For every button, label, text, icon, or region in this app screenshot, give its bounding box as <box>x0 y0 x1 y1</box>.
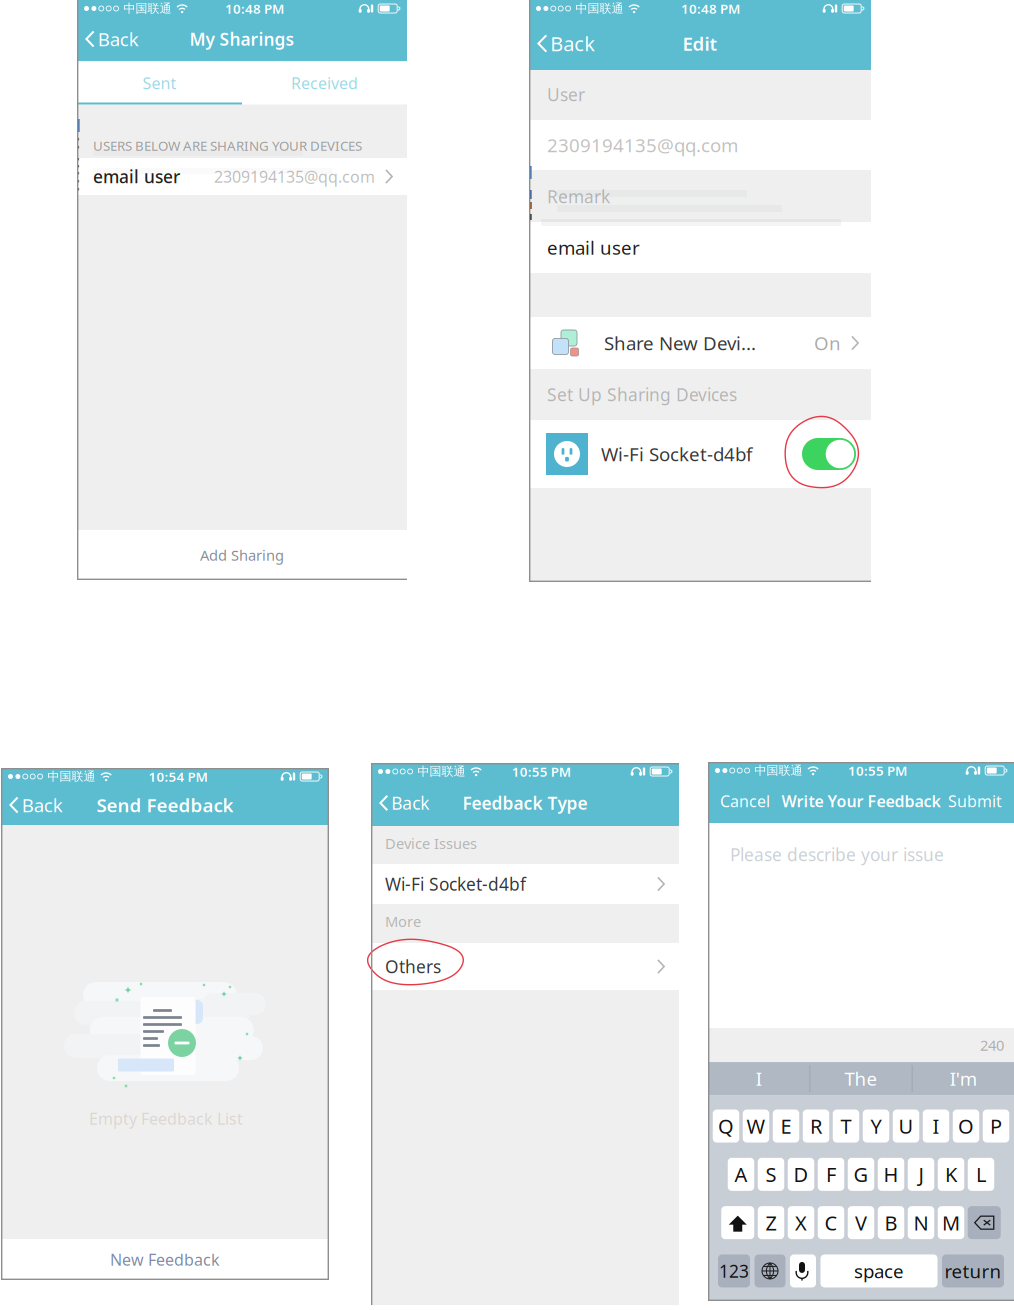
button[interactable]: Back <box>529 17 601 70</box>
staticText: More <box>385 911 421 931</box>
staticText: 中国联通 <box>755 763 803 778</box>
button[interactable]: Y <box>863 1109 889 1142</box>
button[interactable]: S <box>758 1158 784 1191</box>
staticText: 10:55 PM <box>512 763 571 780</box>
staticText: 10:48 PM <box>225 0 284 17</box>
button[interactable]: I <box>923 1109 949 1142</box>
button[interactable]: V <box>848 1206 874 1239</box>
button[interactable]: Delete <box>968 1206 1001 1239</box>
staticText: J <box>918 1161 923 1188</box>
button[interactable]: Dictation <box>790 1254 816 1287</box>
button[interactable]: F <box>818 1158 844 1191</box>
button[interactable]: Submit <box>948 779 1014 823</box>
staticText: Z <box>765 1209 776 1236</box>
button[interactable]: B <box>878 1206 904 1239</box>
staticText: Others <box>385 955 441 978</box>
staticText: V <box>855 1209 867 1236</box>
button[interactable]: U <box>893 1109 919 1142</box>
staticText: Device Issues <box>385 833 477 853</box>
button[interactable]: H <box>878 1158 904 1191</box>
button[interactable]: Shift <box>721 1206 754 1239</box>
staticText: A <box>734 1161 747 1188</box>
button[interactable]: Others <box>371 943 679 990</box>
staticText: I <box>756 1066 762 1091</box>
button[interactable]: The <box>810 1062 912 1095</box>
staticText: X <box>795 1209 807 1236</box>
staticText: 2309194135@qq.com <box>547 133 738 157</box>
button[interactable]: email user <box>77 158 407 195</box>
staticText: On <box>814 331 841 355</box>
button[interactable]: N <box>908 1206 934 1239</box>
staticText: Sent <box>142 72 176 94</box>
button[interactable]: T <box>833 1109 859 1142</box>
staticText: 中国联通 <box>124 1 172 16</box>
staticText: User <box>547 83 585 106</box>
staticText: N <box>913 1209 928 1236</box>
staticText: My Sharings <box>189 27 294 50</box>
button[interactable]: Cancel <box>708 779 776 823</box>
staticText: Add Sharing <box>200 545 284 565</box>
button[interactable]: return <box>942 1254 1004 1287</box>
staticText: I'm <box>950 1066 977 1091</box>
staticText: U <box>898 1113 913 1139</box>
staticText: email user <box>547 235 640 260</box>
staticText: Back <box>98 27 139 51</box>
button[interactable]: M <box>938 1206 964 1239</box>
staticText: Cancel <box>720 790 770 812</box>
button[interactable]: R <box>803 1109 829 1142</box>
staticText: return <box>944 1259 1001 1283</box>
button[interactable]: Q <box>713 1109 739 1142</box>
staticText: Y <box>870 1113 881 1139</box>
button[interactable]: Switch keyboard <box>754 1254 785 1287</box>
staticText: E <box>780 1113 791 1139</box>
staticText: Feedback Type <box>462 791 587 814</box>
button[interactable]: Sent <box>77 61 242 104</box>
button[interactable]: Back <box>371 780 435 826</box>
staticText: Edit <box>682 31 717 56</box>
button[interactable]: G <box>848 1158 874 1191</box>
staticText: Back <box>550 30 595 57</box>
button[interactable]: O <box>953 1109 979 1142</box>
staticText: 240 <box>980 1035 1004 1055</box>
button[interactable]: Share New Devi... <box>529 317 871 369</box>
button[interactable]: Back <box>1 785 69 825</box>
button[interactable]: Wi-Fi Socket-d4bf <box>371 864 679 904</box>
button[interactable]: D <box>788 1158 814 1191</box>
staticText: 10:55 PM <box>848 762 907 779</box>
staticText: Remark <box>547 185 610 208</box>
staticText: space <box>854 1259 904 1283</box>
button[interactable]: Z <box>758 1206 784 1239</box>
staticText: email user <box>93 165 180 188</box>
button[interactable]: E <box>773 1109 799 1142</box>
staticText: P <box>990 1113 1002 1139</box>
button[interactable]: Add Sharing <box>77 530 407 580</box>
staticText: M <box>942 1209 960 1236</box>
staticText: 中国联通 <box>48 769 96 784</box>
staticText: S <box>765 1161 776 1188</box>
staticText: O <box>958 1113 974 1139</box>
button[interactable]: J <box>908 1158 934 1191</box>
staticText: F <box>826 1161 836 1188</box>
staticText: Q <box>718 1113 734 1139</box>
button[interactable]: W <box>743 1109 769 1142</box>
staticText: Send Feedback <box>96 793 233 817</box>
staticText: B <box>884 1209 897 1236</box>
button[interactable]: I'm <box>913 1062 1014 1095</box>
button[interactable]: K <box>938 1158 964 1191</box>
button[interactable]: P <box>983 1109 1009 1142</box>
button[interactable]: L <box>968 1158 994 1191</box>
button[interactable]: Back <box>77 17 145 61</box>
button[interactable]: I <box>708 1062 809 1095</box>
staticText: 中国联通 <box>576 1 624 16</box>
button[interactable]: C <box>818 1206 844 1239</box>
staticText: Wi-Fi Socket-d4bf <box>601 442 752 466</box>
staticText: H <box>883 1161 898 1188</box>
button[interactable]: Received <box>242 61 407 104</box>
button[interactable]: A <box>728 1158 754 1191</box>
button[interactable]: 123 <box>718 1254 750 1287</box>
button[interactable]: New Feedback <box>1 1239 329 1280</box>
button[interactable]: space <box>820 1254 937 1287</box>
staticText: Empty Feedback List <box>89 1108 243 1129</box>
staticText: W <box>746 1113 765 1139</box>
button[interactable]: X <box>788 1206 814 1239</box>
